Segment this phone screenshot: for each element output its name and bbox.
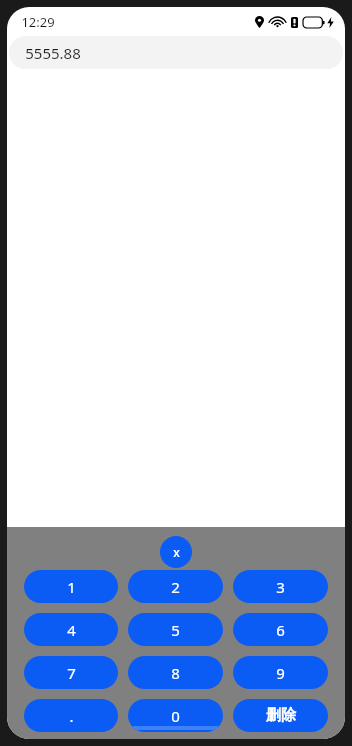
staticText: 7 <box>67 663 76 683</box>
button[interactable]: 4 <box>24 613 118 646</box>
button[interactable]: Close keypad <box>160 536 192 568</box>
staticText: 9 <box>276 663 285 683</box>
button[interactable]: 2 <box>128 570 223 603</box>
button[interactable]: 7 <box>24 656 118 689</box>
staticText: 2 <box>171 577 180 597</box>
button[interactable]: 3 <box>233 570 328 603</box>
button[interactable]: 6 <box>233 613 328 646</box>
staticText: 6 <box>276 620 285 640</box>
button[interactable]: 5555.88 <box>9 36 343 69</box>
staticText: 删除 <box>266 706 296 725</box>
staticText: 4 <box>67 620 76 640</box>
staticText: 0 <box>171 706 180 726</box>
staticText: 1 <box>67 577 76 597</box>
staticText: 8 <box>171 663 180 683</box>
button[interactable]: 8 <box>128 656 223 689</box>
button[interactable]: 1 <box>24 570 118 603</box>
button[interactable]: 5 <box>128 613 223 646</box>
staticText: x <box>173 544 180 560</box>
staticText: . <box>69 706 74 726</box>
staticText: 5 <box>171 620 180 640</box>
button[interactable]: 0 <box>128 699 223 732</box>
staticText: 3 <box>276 577 285 597</box>
button[interactable]: . <box>24 699 118 732</box>
button[interactable]: 9 <box>233 656 328 689</box>
staticText: 5555.88 <box>25 43 81 63</box>
button[interactable]: 删除 <box>233 699 328 732</box>
staticText: 12:29 <box>21 13 55 31</box>
